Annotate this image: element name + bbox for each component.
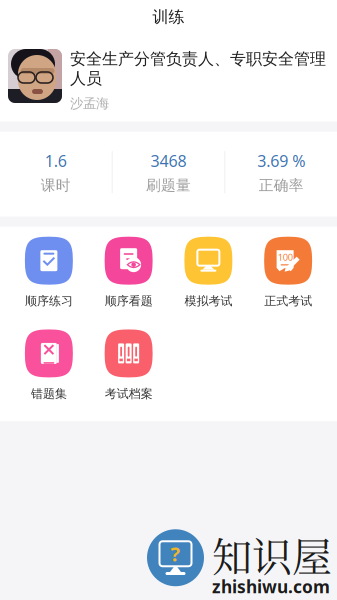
staticText: 正式考试 <box>264 294 312 308</box>
button[interactable]: 模拟考试 <box>168 237 248 308</box>
staticText: 3468 <box>150 150 186 171</box>
staticText: 安全生产分管负责人、专职安全管理人员 <box>70 49 326 88</box>
staticText: 课时 <box>41 176 71 194</box>
staticText: 考试档案 <box>105 386 153 401</box>
staticText: 100 <box>278 251 293 263</box>
staticText: 顺序练习 <box>25 294 73 308</box>
staticText: 正确率 <box>259 176 304 194</box>
staticText: zhishiwu.com <box>212 575 330 598</box>
staticText: 1.6 <box>45 150 67 171</box>
button[interactable]: 错题集 <box>9 329 89 401</box>
staticText: 沙孟海 <box>70 95 109 112</box>
staticText: 顺序看题 <box>105 294 153 308</box>
staticText: 知识屋 <box>212 525 332 583</box>
staticText: ? <box>170 540 180 567</box>
staticText: 训练 <box>152 7 184 27</box>
button[interactable]: 考试档案 <box>89 329 169 401</box>
staticText: 刷题量 <box>146 176 191 194</box>
staticText: 模拟考试 <box>184 294 232 308</box>
button[interactable]: 顺序练习 <box>9 237 89 308</box>
staticText: 3.69 % <box>257 150 305 171</box>
button[interactable]: 100 <box>248 237 328 308</box>
staticText: 错题集 <box>31 386 67 401</box>
button[interactable]: 顺序看题 <box>89 237 169 308</box>
